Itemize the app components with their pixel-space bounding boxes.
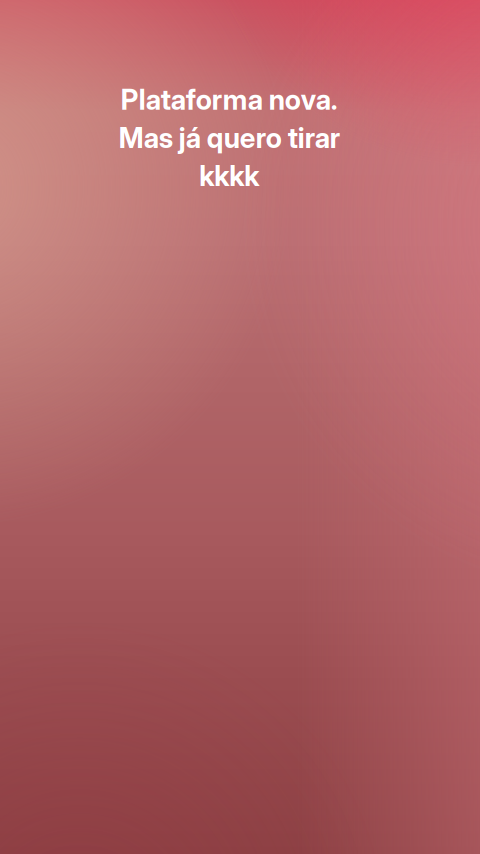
staticText: Plataforma nova. Mas já quero tirar kkkk [118, 83, 339, 193]
